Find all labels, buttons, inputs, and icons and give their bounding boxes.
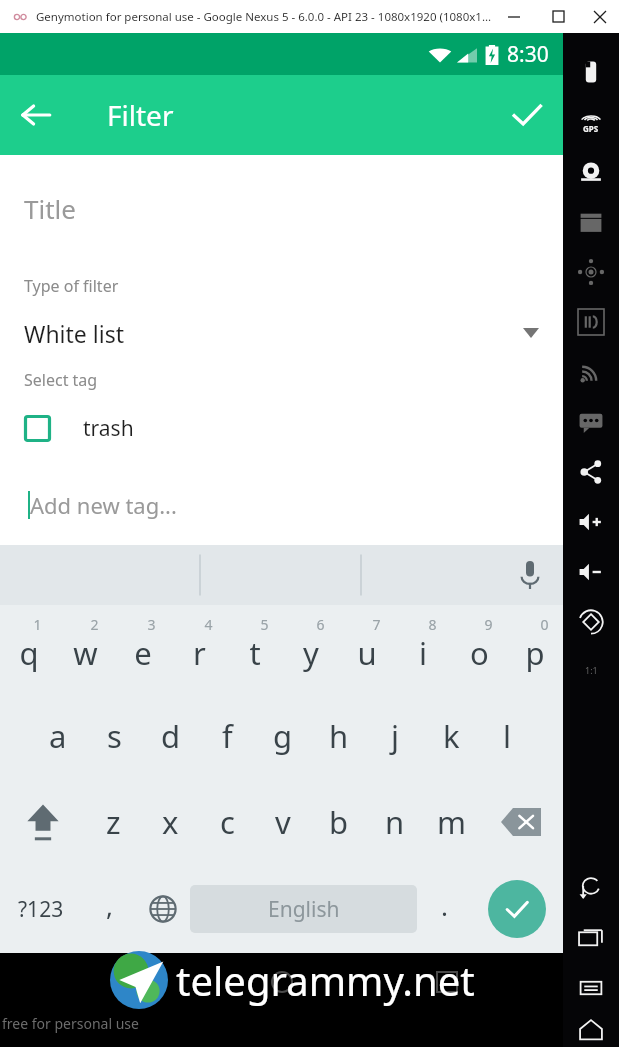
button[interactable]: English	[190, 885, 417, 933]
staticText: z	[106, 801, 121, 843]
staticText: trash	[83, 414, 134, 443]
staticText: GPS	[583, 123, 599, 134]
button[interactable]: 0	[507, 605, 563, 693]
button[interactable]: White list	[0, 311, 563, 355]
button[interactable]: Minimize	[492, 0, 536, 33]
staticText: r	[193, 632, 206, 674]
button[interactable]: 6	[283, 605, 339, 693]
staticText: 9	[484, 615, 493, 634]
staticText: a	[49, 715, 67, 757]
button[interactable]: GPS	[563, 97, 619, 147]
button[interactable]: k	[423, 693, 479, 779]
button[interactable]: Back	[563, 863, 619, 913]
button[interactable]: Voice input	[497, 545, 563, 605]
staticText: telegrammy.net	[176, 953, 475, 1007]
button[interactable]: 8	[395, 605, 451, 693]
staticText: l	[503, 715, 511, 757]
staticText: 3	[147, 615, 156, 634]
button[interactable]: Battery	[563, 47, 619, 97]
staticText: o	[470, 632, 489, 674]
staticText: w	[73, 632, 98, 674]
button[interactable]: Title	[0, 191, 563, 241]
button[interactable]: ?123	[0, 865, 82, 953]
button[interactable]: Accelerometer	[563, 247, 619, 297]
button[interactable]: ,	[82, 865, 136, 953]
button[interactable]: SMS	[563, 397, 619, 447]
staticText: e	[134, 632, 152, 674]
staticText: m	[437, 801, 466, 843]
button[interactable]: h	[311, 693, 367, 779]
button[interactable]: 2	[57, 605, 114, 693]
button[interactable]: Recent apps	[397, 953, 497, 1011]
button[interactable]: 7	[339, 605, 395, 693]
staticText: Add new tag...	[30, 490, 177, 520]
staticText: n	[385, 801, 405, 843]
button[interactable]: Done	[491, 75, 563, 155]
staticText: j	[391, 715, 399, 757]
button[interactable]: Maximize	[536, 0, 580, 33]
button[interactable]: n	[367, 779, 423, 865]
staticText: g	[273, 715, 293, 757]
button[interactable]: Identifiers	[563, 297, 619, 347]
button[interactable]: 3	[114, 605, 171, 693]
button[interactable]: 5	[227, 605, 283, 693]
button[interactable]: Back	[0, 75, 72, 155]
staticText: b	[329, 801, 349, 843]
button[interactable]: c	[199, 779, 255, 865]
button[interactable]: d	[143, 693, 199, 779]
staticText: p	[525, 632, 545, 674]
button[interactable]: Recent apps	[563, 913, 619, 963]
button[interactable]: trash	[0, 405, 563, 451]
staticText: x	[162, 801, 179, 843]
button[interactable]: Back	[66, 953, 166, 1011]
button[interactable]: Volume up	[563, 497, 619, 547]
staticText: Type of filter	[24, 275, 119, 297]
button[interactable]: a	[29, 693, 86, 779]
button[interactable]: j	[367, 693, 423, 779]
staticText: y	[303, 632, 319, 674]
staticText: 0	[540, 615, 549, 634]
button[interactable]: Scale 1:1	[563, 647, 619, 693]
button[interactable]: Change language	[136, 865, 190, 953]
button[interactable]: m	[423, 779, 479, 865]
button[interactable]: 1	[0, 605, 57, 693]
button[interactable]: Backspace	[479, 779, 563, 865]
button[interactable]: l	[479, 693, 535, 779]
staticText: f	[222, 715, 233, 757]
staticText: ,	[106, 888, 113, 923]
button[interactable]: g	[255, 693, 311, 779]
button[interactable]: 9	[451, 605, 507, 693]
button[interactable]: Network	[563, 347, 619, 397]
staticText: 7	[372, 615, 381, 634]
button[interactable]: Enter	[471, 865, 563, 953]
button[interactable]: Shift	[0, 779, 85, 865]
button[interactable]: z	[85, 779, 142, 865]
button[interactable]: .	[417, 865, 471, 953]
button[interactable]: f	[199, 693, 255, 779]
staticText: d	[161, 715, 181, 757]
button[interactable]: Volume down	[563, 547, 619, 597]
button[interactable]: x	[142, 779, 199, 865]
button[interactable]: Add new tag...	[0, 485, 563, 525]
button[interactable]: Camera	[563, 147, 619, 197]
button[interactable]: Menu	[563, 963, 619, 1013]
staticText: English	[268, 895, 340, 924]
button[interactable]: v	[255, 779, 311, 865]
staticText: 8	[428, 615, 437, 634]
button[interactable]: 4	[171, 605, 227, 693]
button[interactable]: Home	[232, 953, 332, 1011]
button[interactable]: s	[86, 693, 143, 779]
button[interactable]: b	[311, 779, 367, 865]
button[interactable]: Video	[563, 197, 619, 247]
staticText: Select tag	[24, 369, 98, 391]
staticText: c	[220, 801, 235, 843]
staticText: v	[275, 801, 291, 843]
button[interactable]: Share	[563, 447, 619, 497]
staticText: White list	[24, 318, 124, 349]
button[interactable]: Rotate	[563, 597, 619, 647]
staticText: .	[441, 888, 448, 923]
staticText: 1:1	[585, 664, 598, 676]
button[interactable]: Home	[563, 1013, 619, 1047]
staticText: Genymotion for personal use - Google Nex…	[36, 9, 492, 25]
button[interactable]: Close	[580, 0, 619, 33]
